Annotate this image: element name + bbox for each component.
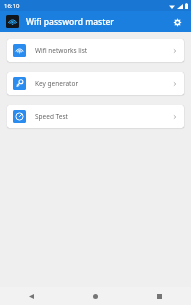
button[interactable]: Wifi networks list — [7, 39, 184, 62]
button[interactable]: Key generator — [7, 72, 184, 95]
button[interactable]: Settings — [169, 14, 185, 30]
button[interactable]: Speed Test — [7, 105, 184, 128]
staticText: Wifi networks list — [35, 46, 88, 55]
staticText: Key generator — [35, 79, 79, 88]
button[interactable]: Back — [0, 287, 63, 305]
staticText: Speed Test — [35, 112, 68, 121]
button[interactable]: Recent apps — [127, 287, 191, 305]
staticText: Wifi password master — [26, 16, 114, 28]
button[interactable]: Home — [63, 287, 127, 305]
staticText: 16:10 — [4, 2, 20, 10]
